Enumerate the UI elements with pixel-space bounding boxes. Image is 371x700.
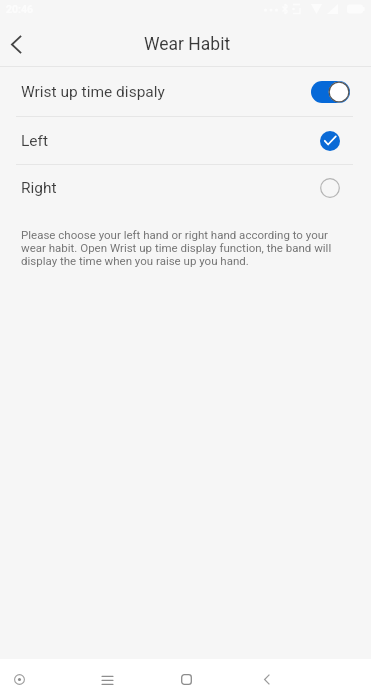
button[interactable]: Menu bbox=[85, 659, 129, 700]
staticText: Wrist up time dispaly bbox=[21, 83, 165, 101]
button[interactable]: Wrist up time display toggle bbox=[311, 81, 350, 103]
button[interactable]: Selected bbox=[318, 125, 350, 157]
button[interactable]: Home bbox=[164, 659, 208, 700]
button[interactable]: Left bbox=[0, 117, 371, 164]
button[interactable]: Not selected bbox=[318, 172, 350, 204]
staticText: Please choose your left hand or right ha… bbox=[21, 228, 344, 267]
button[interactable]: Back bbox=[0, 18, 44, 66]
staticText: Wear Habit bbox=[144, 34, 231, 55]
staticText: Left bbox=[21, 132, 49, 150]
button[interactable]: Right bbox=[0, 165, 371, 210]
staticText: Right bbox=[21, 179, 57, 197]
button[interactable]: Assistant bbox=[0, 659, 41, 700]
button[interactable]: Wrist up time dispaly bbox=[0, 67, 371, 116]
button[interactable]: Back bbox=[245, 659, 289, 700]
